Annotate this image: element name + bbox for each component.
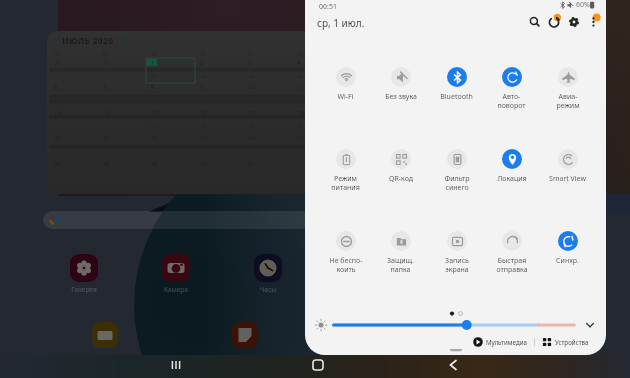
button[interactable]: Защищ. папка <box>373 231 428 274</box>
staticText: Авиа- режим <box>556 92 580 110</box>
staticText: Режим питания <box>331 174 360 192</box>
button[interactable]: Авто- поворот <box>484 67 539 110</box>
button[interactable]: Wi-Fi <box>318 67 373 102</box>
other: Navigation bar <box>0 0 630 378</box>
button[interactable]: Устройства <box>542 337 589 347</box>
button[interactable]: More options <box>585 13 603 31</box>
staticText: Защищ. папка <box>387 256 414 274</box>
staticText: СР <box>151 51 158 58</box>
staticText: Wi-Fi <box>337 92 354 102</box>
staticText: Bluetooth <box>440 92 473 102</box>
staticText: Не беспо- коить <box>329 256 363 274</box>
staticText: 16 <box>200 109 207 117</box>
button[interactable]: Авиа- режим <box>540 67 595 110</box>
staticText: Запись экрана <box>445 256 469 274</box>
staticText: 14 <box>103 109 110 117</box>
button[interactable]: Локация <box>484 149 539 184</box>
staticText: Без звука <box>385 92 417 102</box>
button[interactable]: Фильтр синего <box>429 149 484 192</box>
button[interactable]: Запись экрана <box>429 231 484 274</box>
staticText: ИЮЛЬ 2020 <box>62 35 114 47</box>
staticText: QR-код <box>389 174 413 184</box>
button[interactable]: Settings <box>565 13 583 31</box>
staticText: Галерея <box>58 285 110 294</box>
button[interactable]: Notes <box>232 322 258 348</box>
staticText: Авто- поворот <box>497 92 526 110</box>
staticText: 4 <box>297 59 301 67</box>
staticText: 8 <box>151 83 155 91</box>
staticText: Камера <box>150 285 202 294</box>
staticText: Быстрая отправка <box>496 256 528 274</box>
button[interactable]: Power off <box>545 13 563 31</box>
staticText: 00:51 <box>319 2 337 12</box>
staticText: 6 <box>54 83 58 91</box>
button[interactable]: Search <box>526 13 544 31</box>
button[interactable]: Bluetooth <box>429 67 484 102</box>
button[interactable]: Мультимедиа <box>473 337 527 347</box>
staticText: Smart View <box>549 174 586 184</box>
staticText: 15 <box>151 109 158 117</box>
button[interactable]: Expand <box>581 317 599 333</box>
staticText: 1 <box>151 59 155 67</box>
staticText: 2 <box>200 59 204 67</box>
staticText: 17 <box>248 109 255 117</box>
button[interactable] <box>162 254 190 282</box>
staticText: 13 <box>54 109 61 117</box>
staticText: Фильтр синего <box>444 174 470 192</box>
staticText: 3 <box>248 59 252 67</box>
button[interactable]: Search <box>43 211 311 229</box>
button[interactable]: Синхр. <box>540 231 595 266</box>
staticText: 60% <box>576 0 590 10</box>
staticText: Мультимедиа <box>486 338 527 346</box>
button[interactable] <box>70 254 98 282</box>
button[interactable]: Не беспо- коить <box>318 231 373 274</box>
button[interactable]: ИЮЛЬ 2020 <box>47 31 319 194</box>
staticText: Синхр. <box>556 256 579 266</box>
button[interactable]: Smart View <box>540 149 595 184</box>
button[interactable]: QR-код <box>373 149 428 184</box>
button[interactable]: Без звука <box>373 67 428 102</box>
staticText: Устройства <box>555 338 589 346</box>
staticText: ср, 1 июл. <box>317 16 365 30</box>
staticText: Часы <box>242 285 294 294</box>
button[interactable]: Режим питания <box>318 149 373 192</box>
staticText: Локация <box>497 174 527 184</box>
button[interactable] <box>254 254 282 282</box>
button[interactable]: Files <box>92 322 118 348</box>
staticText: 7 <box>103 83 107 91</box>
staticText: 18 <box>297 109 304 117</box>
button[interactable]: Быстрая отправка <box>484 231 539 274</box>
